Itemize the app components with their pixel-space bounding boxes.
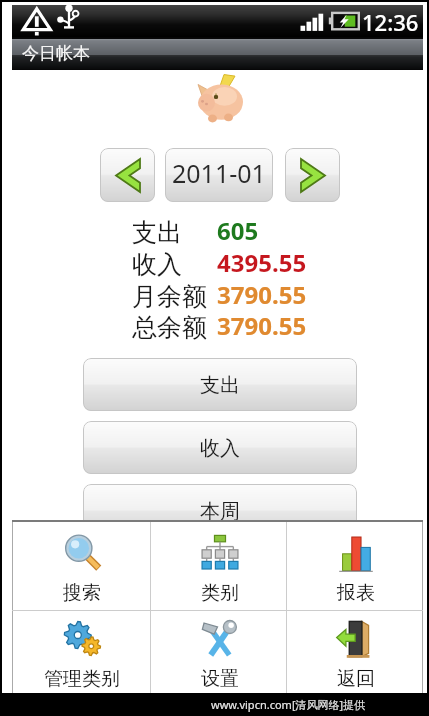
staticText: 支出 [132,217,182,248]
staticText: 月余额 [132,281,207,312]
button[interactable]: 收入 [83,421,357,474]
staticText: 12:36 [362,7,419,37]
staticText: www.vipcn.com[清风网络]提供 [211,697,366,712]
staticText: 收入 [200,436,240,461]
button[interactable]: Previous month [100,148,155,202]
button[interactable]: 2011-01 [165,148,273,202]
button[interactable]: 返回 [287,608,424,693]
staticText: 支出 [200,373,240,398]
staticText: 类别 [201,581,239,605]
staticText: 搜索 [63,581,101,605]
button[interactable]: Next month [285,148,340,202]
staticText: 报表 [337,581,375,605]
staticText: 3790.55 [217,309,307,341]
button[interactable]: 管理类别 [13,608,150,693]
staticText: 设置 [201,667,239,691]
staticText: 605 [217,214,259,246]
button[interactable]: 支出 [83,358,357,411]
button[interactable]: 搜索 [13,522,150,607]
staticText: 返回 [337,667,375,691]
button[interactable]: 设置 [151,608,288,693]
button[interactable]: 类别 [151,522,288,607]
staticText: 管理类别 [44,667,120,691]
staticText: 收入 [132,249,182,280]
staticText: 2011-01 [172,156,266,190]
staticText: 今日帐本 [22,43,90,64]
staticText: 本周 [200,499,240,524]
staticText: 3790.55 [217,278,307,310]
staticText: 4395.55 [217,246,307,278]
button[interactable]: 报表 [287,522,424,607]
staticText: 总余额 [132,312,207,343]
button[interactable]: 本周 [83,484,357,537]
